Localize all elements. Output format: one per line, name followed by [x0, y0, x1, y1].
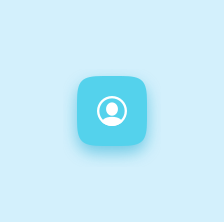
- button[interactable]: Profile: [77, 76, 147, 146]
